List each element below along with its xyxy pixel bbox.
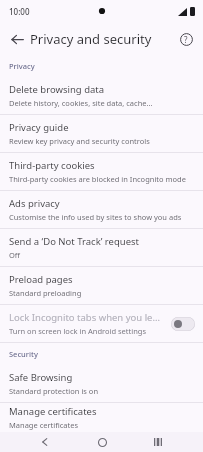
button[interactable]: Send a ‘Do Not Track’ request (0, 229, 203, 266)
button[interactable]: Back (4, 26, 30, 52)
staticText: Ads privacy (9, 197, 60, 210)
button[interactable]: Lock Incognito tabs when you leave Chrom… (0, 305, 203, 342)
button[interactable]: Help (174, 27, 198, 51)
staticText: 10:00 (9, 6, 30, 17)
staticText: Lock Incognito tabs when you leave Chrom… (9, 311, 165, 324)
staticText: Privacy and security (30, 30, 152, 48)
staticText: Send a ‘Do Not Track’ request (9, 235, 140, 248)
staticText: ? (184, 34, 188, 45)
staticText: Standard preloading (9, 288, 82, 298)
button[interactable]: Safe Browsing (0, 365, 203, 402)
button[interactable]: Privacy guide (0, 115, 203, 152)
staticText: Review key privacy and security controls (9, 136, 150, 146)
staticText: Privacy (9, 61, 35, 71)
button[interactable]: Recents (146, 432, 170, 452)
button[interactable]: Delete browsing data (0, 77, 203, 114)
button[interactable]: Ads privacy (0, 191, 203, 228)
staticText: Customise the info used by sites to show… (9, 212, 182, 222)
button[interactable]: Manage certificates (0, 403, 203, 432)
staticText: Third-party cookies (9, 159, 95, 172)
staticText: Delete browsing data (9, 83, 105, 96)
staticText: Turn on screen lock in Android settings (9, 326, 147, 336)
staticText: Manage certificates (9, 420, 79, 430)
button[interactable]: Lock Incognito tabs toggle (171, 317, 195, 331)
staticText: Standard protection is on (9, 386, 99, 396)
staticText: Third-party cookies are blocked in Incog… (9, 174, 186, 184)
button[interactable]: Preload pages (0, 267, 203, 304)
staticText: Delete history, cookies, site data, cach… (9, 98, 153, 108)
staticText: Manage certificates (9, 405, 97, 418)
button[interactable]: Back (33, 432, 57, 452)
staticText: Security (9, 349, 38, 359)
button[interactable]: Home (90, 432, 114, 452)
staticText: Off (9, 250, 21, 260)
staticText: Privacy guide (9, 121, 69, 134)
button[interactable]: Third-party cookies (0, 153, 203, 190)
staticText: Safe Browsing (9, 371, 73, 384)
staticText: Preload pages (9, 273, 73, 286)
